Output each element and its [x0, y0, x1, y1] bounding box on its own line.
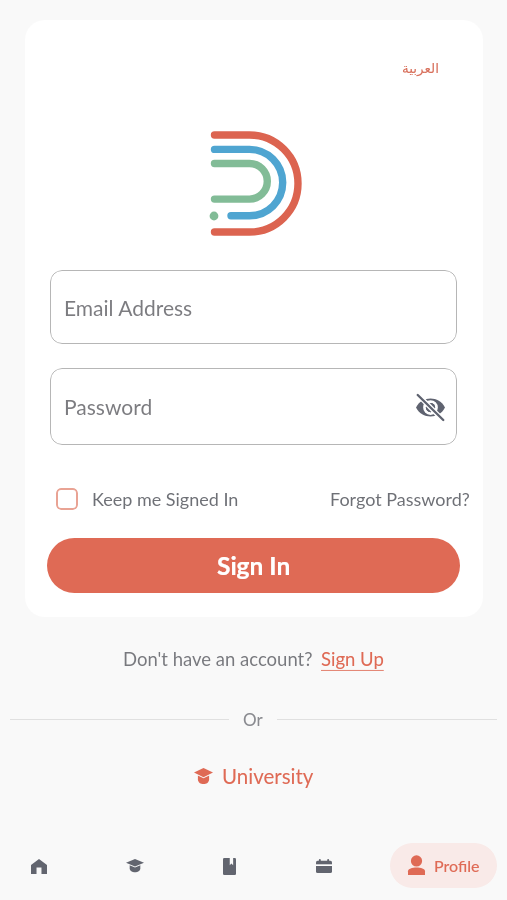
- button[interactable]: Courses: [108, 839, 162, 893]
- button[interactable]: Home: [12, 839, 66, 893]
- staticText: Password: [64, 394, 153, 419]
- staticText: Email Address: [64, 295, 193, 320]
- button[interactable]: Bookmarks: [202, 839, 256, 893]
- staticText: Keep me Signed In: [92, 488, 239, 510]
- button[interactable]: Email Address: [50, 270, 457, 344]
- staticText: University: [222, 764, 314, 789]
- staticText: Don't have an account?: [123, 648, 313, 670]
- button[interactable]: Calendar: [297, 839, 351, 893]
- button[interactable]: University: [194, 764, 314, 789]
- button[interactable]: العربية: [388, 51, 452, 84]
- staticText: Sign In: [217, 551, 291, 580]
- button[interactable]: Forgot Password?: [330, 488, 470, 510]
- button[interactable]: Sign Up: [321, 648, 384, 670]
- button[interactable]: Keep me Signed In: [50, 488, 243, 510]
- button[interactable]: Show password: [413, 390, 447, 424]
- staticText: Forgot Password?: [330, 488, 470, 510]
- button[interactable]: Sign In: [47, 538, 460, 593]
- staticText: Profile: [434, 856, 480, 875]
- button[interactable]: Profile: [390, 843, 497, 888]
- staticText: العربية: [402, 60, 439, 76]
- staticText: Sign Up: [321, 648, 384, 670]
- button[interactable]: Password: [50, 368, 457, 445]
- staticText: Or: [243, 709, 263, 729]
